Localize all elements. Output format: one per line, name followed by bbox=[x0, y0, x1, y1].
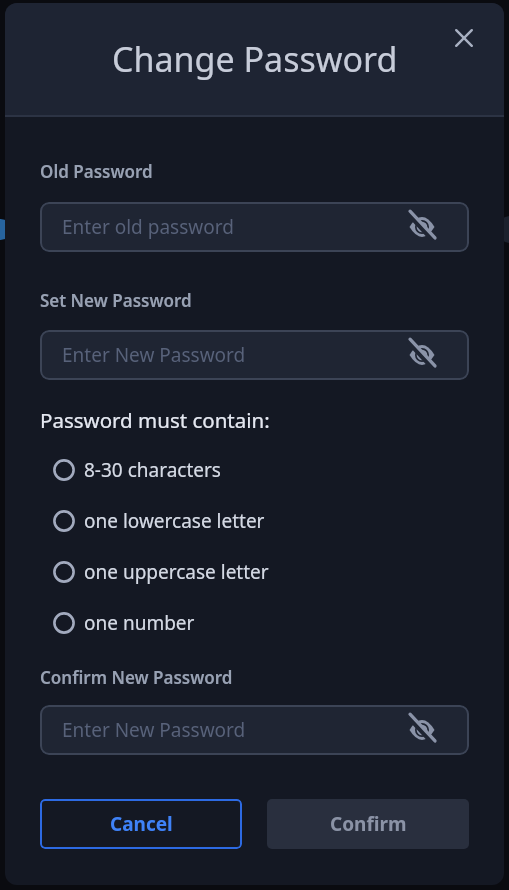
staticText: 8-30 characters bbox=[84, 457, 221, 482]
staticText: Cancel bbox=[110, 811, 173, 837]
staticText: Enter old password bbox=[62, 214, 234, 240]
button[interactable] bbox=[455, 29, 473, 47]
button[interactable]: Enter old password bbox=[40, 202, 469, 252]
staticText: Change Password bbox=[112, 36, 398, 82]
button[interactable]: Enter New Password bbox=[40, 330, 469, 380]
staticText: Enter New Password bbox=[62, 342, 246, 368]
staticText: one number bbox=[84, 610, 195, 635]
button[interactable]: Confirm bbox=[267, 799, 469, 849]
staticText: Password must contain: bbox=[40, 406, 270, 434]
button[interactable]: one uppercase letter bbox=[40, 559, 269, 584]
button[interactable]: 8-30 characters bbox=[40, 457, 221, 482]
staticText: Set New Password bbox=[40, 289, 192, 312]
staticText: Confirm New Password bbox=[40, 666, 233, 689]
staticText: Old Password bbox=[40, 160, 153, 183]
button[interactable]: one lowercase letter bbox=[40, 508, 265, 533]
button[interactable]: Enter New Password bbox=[40, 705, 469, 755]
staticText: one uppercase letter bbox=[84, 559, 269, 584]
staticText: Confirm bbox=[330, 811, 407, 837]
button[interactable]: Cancel bbox=[40, 799, 242, 849]
staticText: Enter New Password bbox=[62, 717, 246, 743]
button[interactable]: one number bbox=[40, 610, 195, 635]
staticText: one lowercase letter bbox=[84, 508, 265, 533]
